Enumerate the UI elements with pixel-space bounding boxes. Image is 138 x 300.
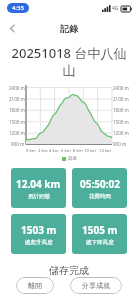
staticText: 2400 m xyxy=(9,85,25,91)
staticText: 900 m xyxy=(11,141,25,147)
staticText: 4:35 xyxy=(12,4,24,12)
staticText: 花費時間 xyxy=(89,193,111,200)
staticText: 2400 m xyxy=(113,85,129,91)
button[interactable]: Back xyxy=(0,16,24,40)
staticText: 2100 m xyxy=(113,96,129,102)
staticText: 記錄 xyxy=(60,23,78,34)
staticText: 2100 m xyxy=(9,96,25,102)
staticText: 2 km xyxy=(38,148,48,154)
staticText: 8 km xyxy=(73,148,83,154)
staticText: 0 km xyxy=(26,148,36,154)
staticText: 累計距離 xyxy=(28,193,50,200)
staticText: 1800 m xyxy=(113,107,129,113)
staticText: 6 km xyxy=(61,148,71,154)
button[interactable]: 離開 xyxy=(16,277,54,294)
staticText: 900 m xyxy=(113,141,127,147)
staticText: 儲存完成 xyxy=(0,264,138,277)
staticText: 05:50:02 xyxy=(80,177,120,191)
staticText: 1800 m xyxy=(9,107,25,113)
staticText: 1505 m xyxy=(82,223,118,237)
staticText: 總下降高度 xyxy=(86,239,114,246)
staticText: 分享成就 xyxy=(82,281,110,290)
button[interactable]: 1505 m xyxy=(72,214,127,254)
staticText: 總爬升高度 xyxy=(25,239,53,246)
staticText: 12 km xyxy=(99,148,112,154)
button[interactable]: 1503 m xyxy=(11,214,66,254)
button[interactable]: 分享成就 xyxy=(70,277,122,294)
staticText: 1500 m xyxy=(9,119,25,125)
staticText: 1500 m xyxy=(113,119,129,125)
staticText: 1200 m xyxy=(9,130,25,136)
staticText: 1503 m xyxy=(21,223,57,237)
staticText: 高度 xyxy=(68,156,77,162)
button[interactable]: 12.04 km xyxy=(11,168,66,208)
staticText: 4 km xyxy=(49,148,59,154)
staticText: 10 km xyxy=(84,148,97,154)
staticText: 12.04 km xyxy=(16,177,61,191)
staticText: 20251018 台中八仙山 xyxy=(8,44,130,79)
staticText: 離開 xyxy=(28,281,42,290)
staticText: 1200 m xyxy=(113,130,129,136)
staticText: 4G xyxy=(112,5,119,12)
button[interactable]: 05:50:02 xyxy=(72,168,127,208)
